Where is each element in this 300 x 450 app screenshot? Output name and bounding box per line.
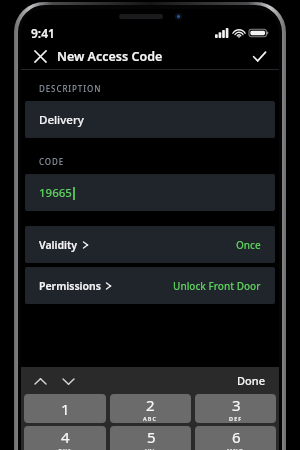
staticText: 2 (146, 395, 155, 415)
staticText: Unlock Front Door (173, 279, 261, 293)
button[interactable]: 3 (195, 394, 276, 423)
staticText: 19665 (39, 185, 72, 201)
button[interactable]: 2 (110, 394, 191, 423)
staticText: Done (237, 373, 265, 388)
button[interactable]: Delivery (25, 101, 275, 138)
staticText: Permissions (39, 279, 101, 293)
staticText: 5 (147, 427, 156, 447)
staticText: New Access Code (57, 48, 163, 65)
button[interactable]: Save (247, 44, 271, 68)
staticText: 4 (61, 427, 70, 447)
button[interactable]: Next field (59, 372, 77, 390)
button[interactable]: Validity (25, 226, 275, 263)
button[interactable]: 4 (24, 426, 106, 450)
button[interactable]: 5 (110, 426, 191, 450)
button[interactable]: Permissions (25, 267, 275, 304)
staticText: 9:41 (31, 25, 55, 41)
staticText: Validity (39, 238, 78, 252)
staticText: JKL (145, 447, 157, 450)
button[interactable]: 6 (195, 426, 276, 450)
button[interactable]: Previous field (31, 372, 49, 390)
button[interactable]: Close (29, 45, 51, 67)
button[interactable]: 19665 (25, 174, 275, 211)
staticText: DESCRIPTION (39, 83, 102, 94)
staticText: Delivery (39, 112, 84, 128)
staticText: Once (236, 238, 261, 252)
staticText: GHI (58, 447, 72, 450)
button[interactable]: Done (233, 370, 269, 391)
staticText: 3 (232, 395, 241, 415)
staticText: DEF (229, 415, 243, 422)
staticText: 6 (232, 427, 241, 447)
staticText: 1 (61, 399, 70, 419)
staticText: MNO (227, 447, 245, 450)
staticText: ABC (143, 415, 158, 422)
staticText: CODE (39, 156, 65, 167)
button[interactable]: 1 (24, 394, 106, 423)
